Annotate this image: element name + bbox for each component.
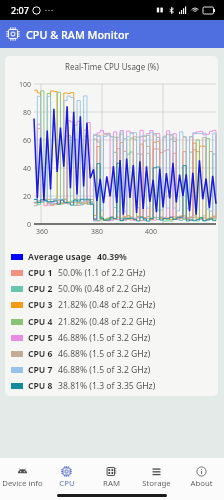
- button[interactable]: About: [179, 466, 224, 488]
- staticText: Storage: [142, 478, 171, 488]
- staticText: 100: [5, 80, 31, 90]
- button[interactable]: RAM: [89, 466, 134, 488]
- button[interactable]: CPU 8: [5, 378, 218, 394]
- staticText: 360: [32, 227, 52, 237]
- staticText: 2:07: [11, 4, 29, 16]
- button[interactable]: CPU: [44, 466, 89, 488]
- staticText: 0: [5, 220, 31, 230]
- staticText: 60: [5, 136, 31, 146]
- button[interactable]: App icon: [6, 27, 20, 41]
- staticText: CPU 6: [28, 348, 53, 360]
- button[interactable]: CPU 1: [5, 265, 218, 281]
- staticText: CPU 3: [28, 299, 53, 311]
- staticText: 400: [141, 227, 161, 237]
- staticText: CPU 4: [28, 316, 53, 328]
- staticText: 46.88% (1.5 of 3.2 GHz): [58, 348, 151, 360]
- button[interactable]: Storage: [134, 466, 179, 488]
- button[interactable]: CPU 7: [5, 362, 218, 378]
- staticText: CPU 7: [28, 364, 53, 376]
- staticText: CPU: [59, 478, 75, 488]
- staticText: 40.39%: [97, 251, 127, 263]
- staticText: 21.82% (0.48 of 2.2 GHz): [58, 316, 156, 328]
- staticText: Average usage: [28, 251, 92, 263]
- staticText: 46.88% (1.5 of 3.2 GHz): [58, 332, 151, 344]
- button[interactable]: Device info: [0, 466, 44, 488]
- staticText: RAM: [103, 478, 120, 488]
- staticText: CPU 5: [28, 332, 53, 344]
- staticText: 40: [5, 164, 31, 174]
- button[interactable]: CPU 2: [5, 281, 218, 297]
- staticText: CPU & RAM Monitor: [26, 27, 130, 42]
- button[interactable]: CPU 4: [5, 314, 218, 330]
- button[interactable]: CPU 5: [5, 330, 218, 346]
- button[interactable]: CPU 6: [5, 346, 218, 362]
- staticText: 46.88% (1.5 of 3.2 GHz): [58, 364, 151, 376]
- staticText: 21.82% (0.48 of 2.2 GHz): [58, 299, 156, 311]
- staticText: 50.0% (0.48 of 2.2 GHz): [58, 283, 151, 295]
- staticText: CPU 1: [28, 267, 53, 279]
- staticText: Real-Time CPU Usage (%): [65, 61, 159, 72]
- button[interactable]: CPU 3: [5, 297, 218, 313]
- staticText: About: [190, 478, 213, 488]
- staticText: 20: [5, 192, 31, 202]
- staticText: 380: [87, 227, 107, 237]
- staticText: 38.81% (1.3 of 3.35 GHz): [58, 380, 156, 392]
- staticText: CPU 8: [28, 380, 53, 392]
- staticText: CPU 2: [28, 283, 53, 295]
- staticText: Device info: [2, 478, 43, 488]
- staticText: 80: [5, 108, 31, 118]
- staticText: 50.0% (1.1 of 2.2 GHz): [58, 267, 146, 279]
- button[interactable]: Average usage: [5, 249, 218, 265]
